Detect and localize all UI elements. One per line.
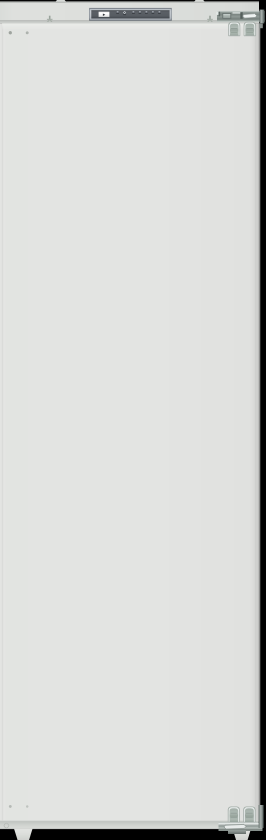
- button[interactable]: Built-in freezer product photo: [0, 0, 266, 840]
